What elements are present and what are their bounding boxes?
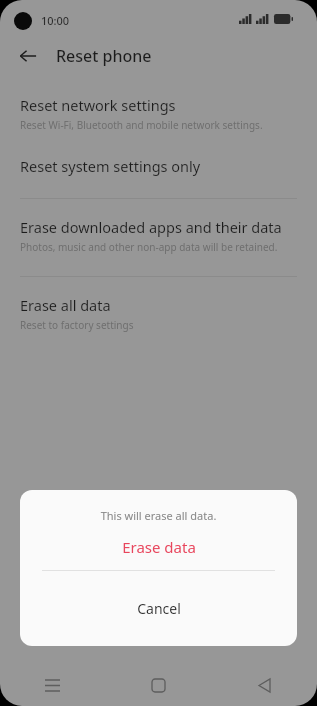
button[interactable]: Erase data (20, 523, 297, 570)
staticText: Photos, music and other non-app data wil… (20, 240, 278, 254)
staticText: Erase all data (20, 295, 111, 315)
button[interactable]: Recent apps (0, 664, 105, 706)
staticText: Reset to factory settings (20, 318, 134, 332)
button[interactable]: Reset system settings only (0, 154, 317, 178)
staticText: 10:00 (41, 13, 70, 28)
button[interactable]: Home (105, 664, 211, 706)
staticText: Cancel (137, 599, 181, 618)
button[interactable]: Back (211, 664, 317, 706)
button[interactable]: Reset network settings (0, 93, 317, 134)
button[interactable]: Back (10, 38, 46, 74)
staticText: Reset phone (56, 45, 152, 67)
staticText: Reset network settings (20, 95, 176, 115)
staticText: Reset system settings only (20, 156, 201, 176)
staticText: Reset Wi-Fi, Bluetooth and mobile networ… (20, 118, 263, 132)
staticText: Erase data (122, 537, 196, 557)
button[interactable]: Cancel (20, 571, 297, 646)
button[interactable]: Erase all data (0, 293, 317, 334)
staticText: This will erase all data. (20, 508, 297, 523)
staticText: Erase downloaded apps and their data (20, 217, 282, 237)
button[interactable]: Erase downloaded apps and their data (0, 215, 317, 256)
